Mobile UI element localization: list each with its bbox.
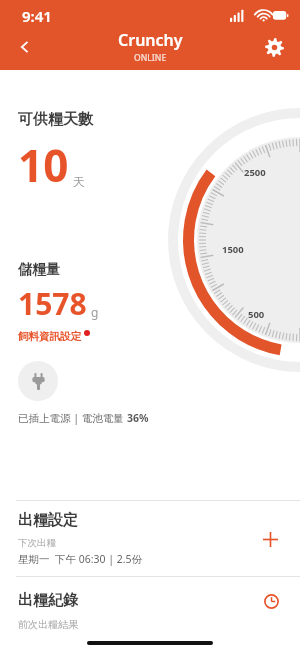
button[interactable]: 出糧設定	[0, 501, 300, 576]
staticText: 飼料資訊設定	[18, 330, 81, 343]
button[interactable]: Power status	[18, 361, 58, 401]
staticText: 儲糧量	[18, 261, 60, 279]
staticText: 出糧設定	[18, 511, 78, 530]
staticText: 天	[73, 174, 85, 189]
staticText: 2500	[244, 166, 266, 179]
button[interactable]: 出糧紀錄	[0, 577, 300, 637]
staticText: 1578	[18, 283, 87, 324]
staticText: 1500	[222, 243, 244, 256]
button[interactable]: 飼料資訊設定	[18, 330, 90, 343]
staticText: 前次出糧結果	[18, 618, 78, 631]
staticText: 已插上電源 | 電池電量	[18, 411, 127, 425]
staticText: 可供糧天數	[18, 110, 93, 129]
staticText: 下次出糧	[18, 537, 56, 549]
button[interactable]: Back	[6, 28, 44, 66]
staticText: 36%	[127, 411, 149, 425]
button[interactable]: History	[258, 588, 284, 614]
staticText: ONLINE	[134, 52, 167, 64]
staticText: 星期一 下午 06:30 | 2.5份	[18, 552, 143, 566]
staticText: 500	[248, 308, 265, 321]
button[interactable]: Add schedule	[256, 525, 284, 553]
staticText: 出糧紀錄	[18, 591, 78, 610]
staticText: g	[91, 304, 99, 320]
button[interactable]: Settings	[254, 27, 294, 67]
staticText: Crunchy	[118, 29, 183, 51]
staticText: 9:41	[22, 6, 52, 26]
staticText: 10	[18, 135, 69, 195]
